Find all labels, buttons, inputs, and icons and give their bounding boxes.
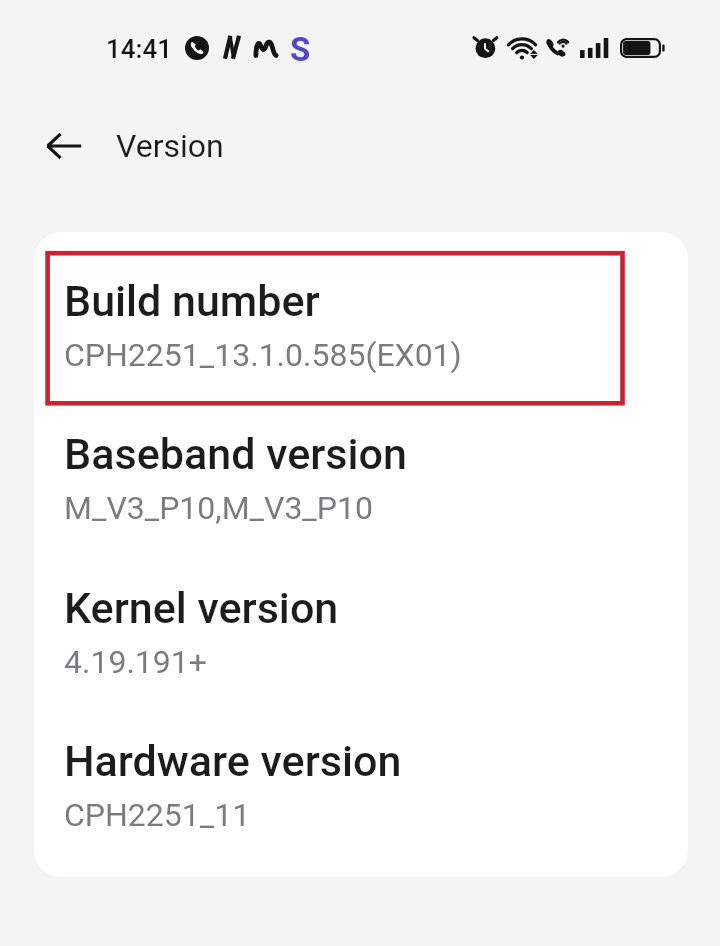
staticText: 14:41 xyxy=(106,34,173,64)
staticText: 4.19.191+ xyxy=(64,643,207,681)
button[interactable]: Back xyxy=(24,113,103,179)
button[interactable]: Hardware version xyxy=(34,717,688,862)
staticText: CPH2251_13.1.0.585(EX01) xyxy=(64,336,462,374)
staticText: Hardware version xyxy=(64,736,402,786)
staticText: CPH2251_11 xyxy=(64,796,251,834)
staticText: Baseband version xyxy=(64,429,407,479)
button[interactable]: Baseband version xyxy=(34,410,688,563)
staticText: S xyxy=(290,30,311,69)
button[interactable]: Build number xyxy=(34,257,688,410)
staticText: M_V3_P10,M_V3_P10 xyxy=(64,489,373,527)
staticText: Kernel version xyxy=(64,583,339,633)
staticText: Version xyxy=(116,127,224,165)
button[interactable]: Kernel version xyxy=(34,564,688,717)
staticText: Build number xyxy=(64,276,320,326)
